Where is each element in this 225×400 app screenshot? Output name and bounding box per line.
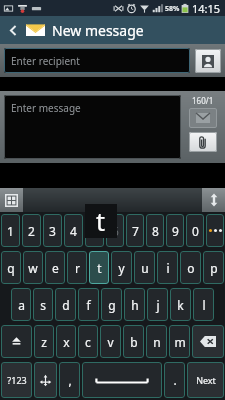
button[interactable]: Attach <box>189 132 217 152</box>
staticText: 160/1 <box>192 95 214 106</box>
button[interactable]: h <box>124 288 145 321</box>
staticText: g <box>108 297 116 313</box>
staticText: q <box>7 260 15 276</box>
staticText: y <box>118 260 125 276</box>
staticText: ?123 <box>7 374 27 386</box>
staticText: Enter message <box>11 101 81 115</box>
button[interactable]: Enter recipient <box>4 48 190 73</box>
staticText: e <box>52 260 59 276</box>
staticText: 6 <box>112 223 119 239</box>
button[interactable]: 4 <box>64 214 83 247</box>
staticText: d <box>62 297 70 313</box>
staticText: 9 <box>172 223 179 239</box>
button[interactable]: u <box>134 251 155 284</box>
button[interactable]: g <box>101 288 122 321</box>
button[interactable]: a <box>11 288 31 321</box>
button[interactable]: i <box>157 251 178 284</box>
staticText: n <box>153 334 161 350</box>
staticText: , <box>68 372 72 388</box>
button[interactable]: Space <box>82 362 162 398</box>
button[interactable]: b <box>123 325 144 358</box>
staticText: l <box>202 297 206 313</box>
button[interactable]: c <box>78 325 98 358</box>
button[interactable]: e <box>45 251 65 284</box>
button[interactable]: Expand suggestions <box>202 188 225 212</box>
button[interactable]: 5 <box>85 214 104 247</box>
button[interactable]: y <box>111 251 132 284</box>
staticText: New message <box>52 21 144 40</box>
button[interactable]: t <box>89 251 109 284</box>
staticText: 7 <box>132 223 139 239</box>
staticText: t <box>97 260 102 276</box>
staticText: Enter recipient <box>11 54 80 68</box>
button[interactable]: 8 <box>146 214 164 247</box>
button[interactable]: Shift <box>1 325 32 358</box>
staticText: v <box>107 334 114 350</box>
staticText: r <box>75 260 80 276</box>
button[interactable]: 6 <box>106 214 124 247</box>
staticText: m <box>174 334 186 350</box>
button[interactable] <box>23 188 202 212</box>
button[interactable]: Keyboard options <box>34 362 57 398</box>
button[interactable]: Delete <box>192 325 224 358</box>
button[interactable]: x <box>56 325 76 358</box>
button[interactable]: 0 <box>186 214 204 247</box>
button[interactable]: . <box>164 362 185 398</box>
staticText: 0 <box>192 223 199 239</box>
button[interactable]: 7 <box>126 214 144 247</box>
staticText: 58% <box>165 4 180 14</box>
staticText: x <box>63 334 70 350</box>
staticText: k <box>177 297 184 313</box>
button[interactable]: 3 <box>43 214 62 247</box>
button[interactable]: , <box>59 362 80 398</box>
staticText: 3 <box>49 223 56 239</box>
button[interactable]: v <box>100 325 121 358</box>
staticText: . <box>173 372 177 388</box>
staticText: 5 <box>91 223 98 239</box>
button[interactable]: Enter message <box>4 95 181 159</box>
button[interactable]: m <box>169 325 190 358</box>
button[interactable] <box>206 214 224 247</box>
button[interactable]: l <box>193 288 214 321</box>
staticText: 14:15 <box>192 1 221 16</box>
button[interactable]: j <box>147 288 168 321</box>
staticText: t <box>96 204 106 238</box>
button[interactable]: s <box>33 288 53 321</box>
button[interactable]: 1 <box>1 214 20 247</box>
button[interactable]: r <box>67 251 87 284</box>
button[interactable]: Keypad layout <box>0 188 23 212</box>
button[interactable]: q <box>1 251 21 284</box>
staticText: f <box>86 297 91 313</box>
staticText: s <box>40 297 46 313</box>
staticText: j <box>156 297 160 313</box>
staticText: Next <box>196 374 216 386</box>
button[interactable]: f <box>78 288 99 321</box>
staticText: u <box>141 260 149 276</box>
button[interactable]: ?123 <box>1 362 32 398</box>
button[interactable]: 9 <box>166 214 184 247</box>
button[interactable]: p <box>203 251 224 284</box>
staticText: o <box>187 260 195 276</box>
button[interactable]: Add recipient from contacts <box>195 49 221 73</box>
button[interactable]: 2 <box>22 214 41 247</box>
button[interactable]: o <box>180 251 201 284</box>
staticText: i <box>166 260 170 276</box>
staticText: 8 <box>152 223 159 239</box>
button[interactable]: Send message <box>189 108 217 128</box>
staticText: 1 <box>7 223 14 239</box>
staticText: b <box>130 334 138 350</box>
staticText: w <box>28 260 38 276</box>
staticText: c <box>85 334 91 350</box>
staticText: 2 <box>28 223 35 239</box>
button[interactable]: Back <box>0 16 26 44</box>
button[interactable]: z <box>34 325 54 358</box>
button[interactable]: w <box>23 251 43 284</box>
staticText: 4 <box>70 223 77 239</box>
staticText: p <box>210 260 218 276</box>
button[interactable]: k <box>170 288 191 321</box>
button[interactable]: Next <box>187 362 224 398</box>
staticText: z <box>41 334 47 350</box>
staticText: a <box>18 297 25 313</box>
button[interactable]: n <box>146 325 167 358</box>
button[interactable]: d <box>55 288 76 321</box>
